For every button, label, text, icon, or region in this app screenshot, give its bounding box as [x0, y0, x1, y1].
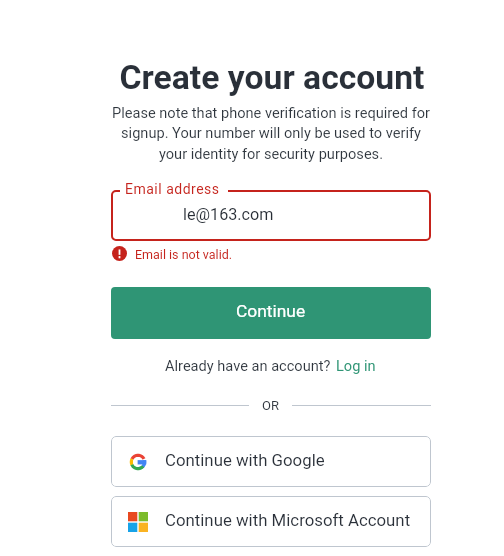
staticText: Already have an account? [165, 357, 331, 374]
staticText: Continue with Google [165, 450, 325, 470]
button[interactable]: Continue [111, 287, 431, 339]
button[interactable]: Continue with Microsoft Account [111, 496, 431, 547]
staticText: Continue with Microsoft Account [165, 510, 411, 530]
staticText: OR [262, 398, 279, 413]
staticText: Log in [336, 357, 376, 374]
staticText: Email is not valid. [135, 247, 233, 262]
staticText: le@163.com [183, 205, 274, 224]
staticText: Continue [236, 301, 306, 321]
staticText: Email address [125, 181, 220, 197]
staticText: Please note that phone verification is r… [109, 104, 433, 163]
staticText: Create your account [72, 58, 472, 97]
button[interactable]: Log in [336, 357, 376, 374]
button[interactable]: Email address [111, 190, 431, 241]
button[interactable]: Continue with Google [111, 436, 431, 487]
